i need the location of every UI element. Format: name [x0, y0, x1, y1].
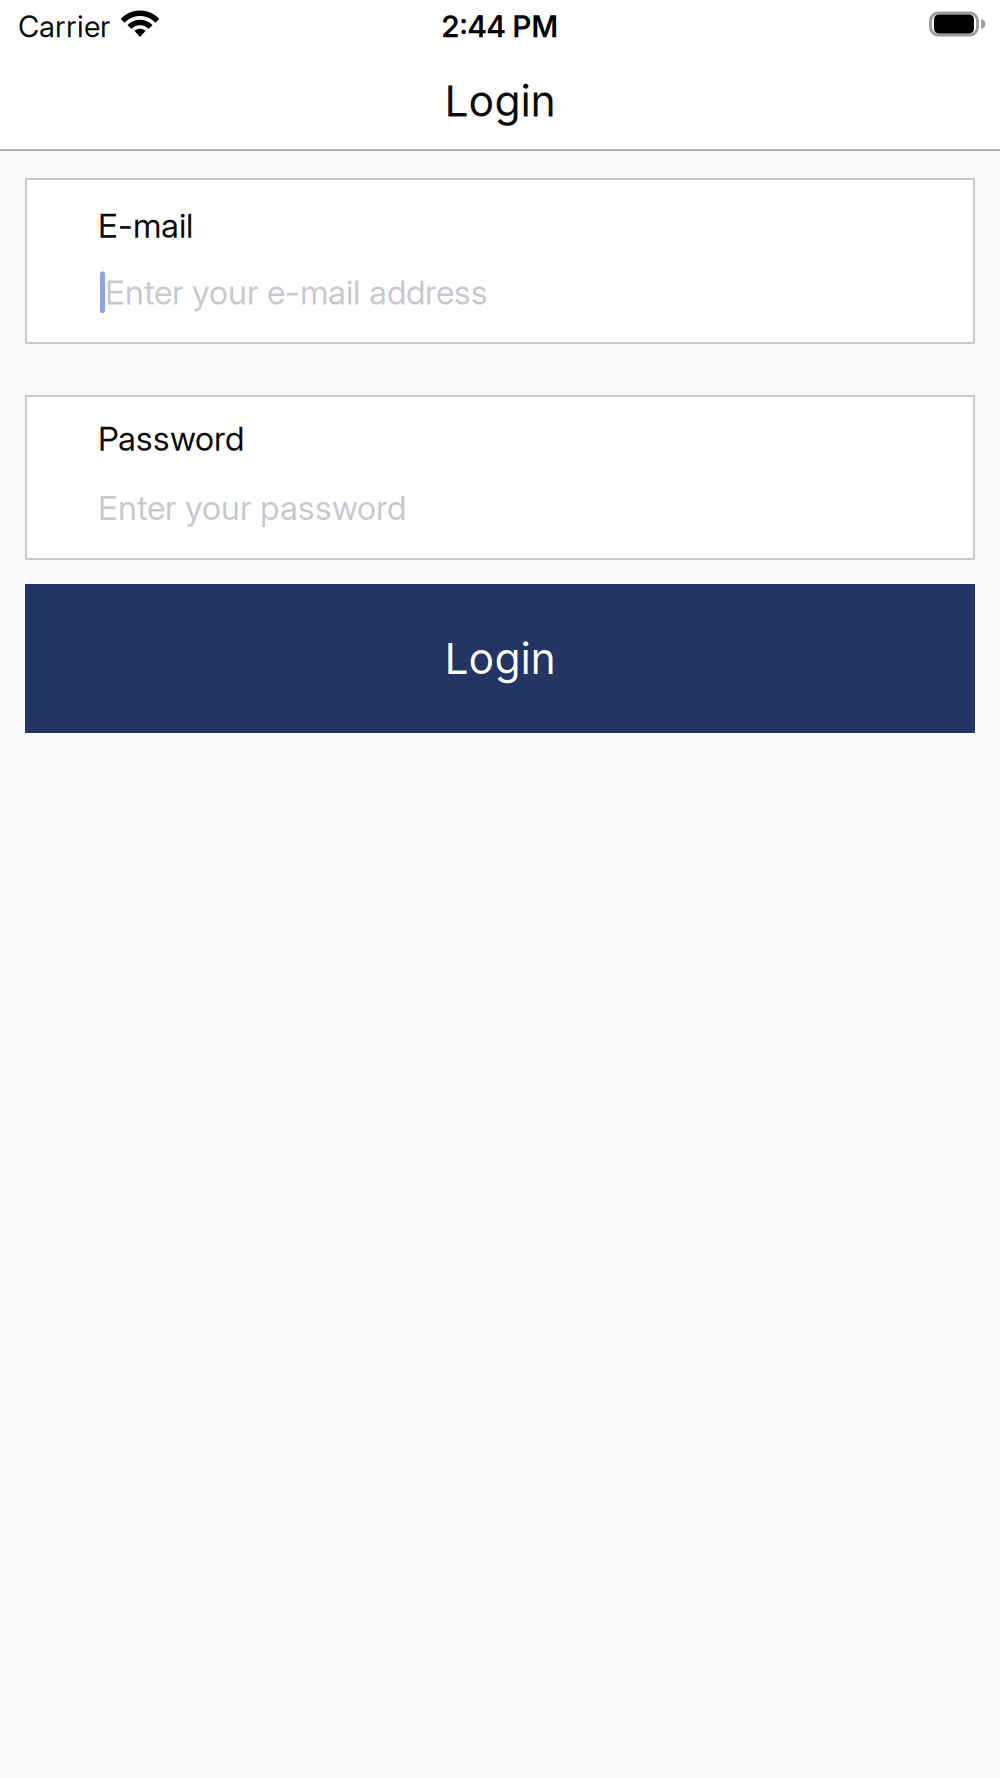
staticText: Carrier	[18, 9, 110, 44]
staticText: Enter your e-mail address	[105, 273, 488, 312]
button[interactable]: Login	[25, 584, 975, 733]
staticText: E-mail	[98, 206, 193, 245]
staticText: Password	[98, 419, 244, 458]
staticText: Login	[444, 633, 555, 684]
button[interactable]: Password	[25, 395, 975, 560]
staticText: Enter your password	[98, 488, 406, 528]
button[interactable]: E-mail	[25, 178, 975, 344]
staticText: Login	[444, 76, 555, 126]
staticText: 2:44 PM	[441, 9, 558, 44]
